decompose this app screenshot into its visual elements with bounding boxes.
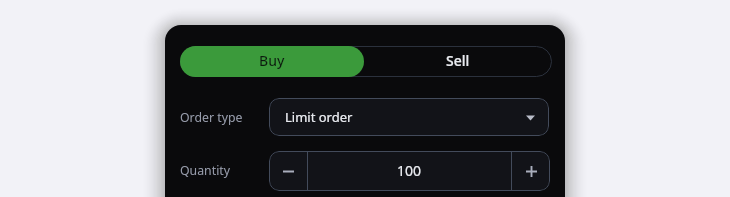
- staticText: Order type: [180, 109, 243, 126]
- button[interactable]: Limit order: [269, 98, 549, 136]
- button[interactable]: Increase quantity: [512, 151, 550, 191]
- staticText: 100: [397, 161, 422, 180]
- button[interactable]: Sell: [364, 46, 551, 77]
- staticText: Quantity: [180, 162, 231, 179]
- staticText: Buy: [259, 51, 285, 70]
- button[interactable]: Decrease quantity: [269, 151, 307, 191]
- staticText: Limit order: [285, 108, 353, 126]
- staticText: Sell: [446, 51, 470, 70]
- button[interactable]: Buy: [180, 46, 364, 77]
